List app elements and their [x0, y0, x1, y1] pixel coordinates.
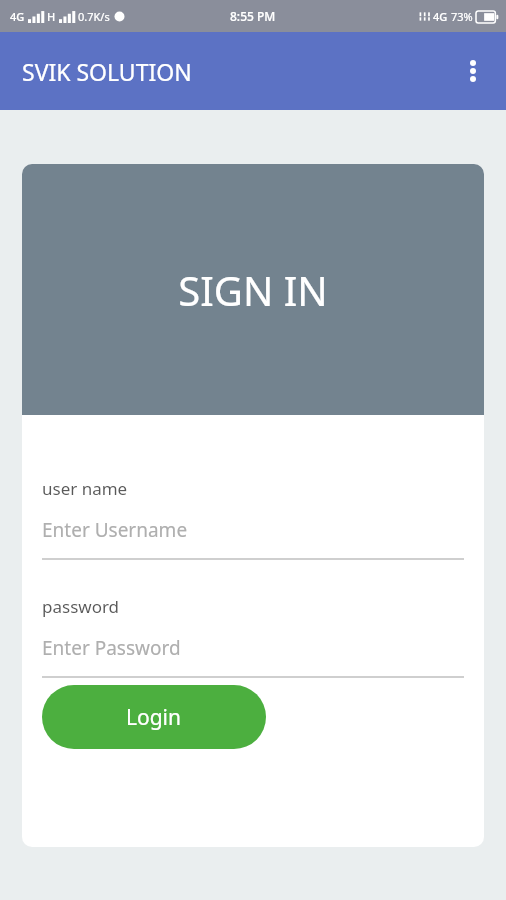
staticText: 4G: [10, 9, 25, 24]
button[interactable]: Enter Password: [42, 635, 464, 661]
staticText: SIGN IN: [178, 263, 328, 317]
staticText: Login: [126, 703, 182, 732]
staticText: 0.7K/s: [78, 9, 110, 24]
staticText: H: [47, 9, 56, 24]
staticText: Enter Password: [42, 635, 181, 661]
staticText: 4G: [433, 9, 448, 24]
staticText: SVIK SOLUTION: [22, 56, 192, 87]
staticText: password: [42, 595, 120, 618]
staticText: user name: [42, 477, 128, 500]
staticText: 8:55 PM: [230, 8, 276, 24]
staticText: Enter Username: [42, 517, 188, 543]
staticText: 73%: [451, 9, 473, 24]
button[interactable]: Enter Username: [42, 517, 464, 543]
button[interactable]: More options: [449, 47, 497, 95]
button[interactable]: Login: [42, 685, 266, 749]
